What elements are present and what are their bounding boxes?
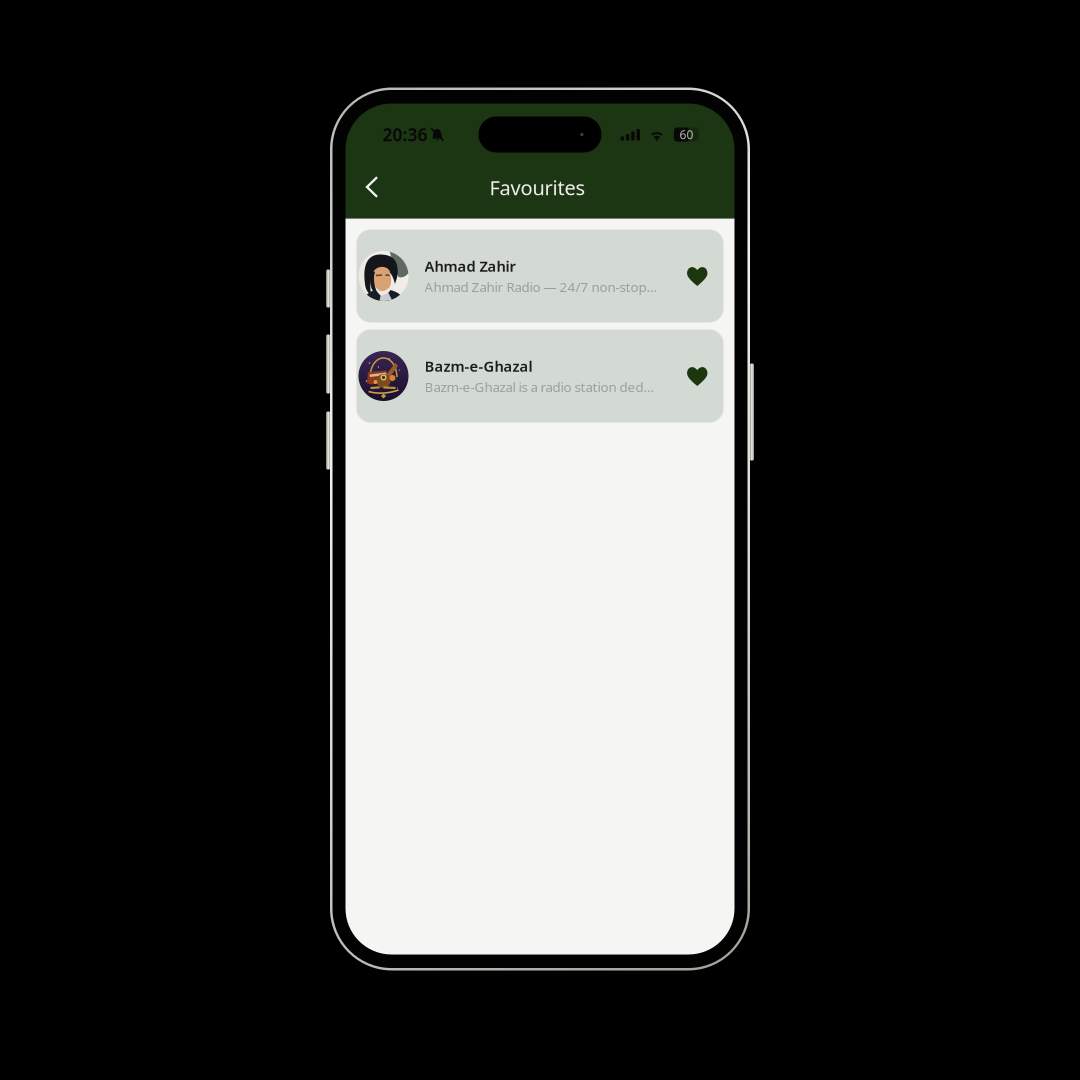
staticText: Bazm-e-Ghazal is a radio station ded…	[424, 378, 654, 396]
staticText: Ahmad Zahir	[424, 256, 515, 276]
staticText: 60	[679, 126, 693, 142]
staticText: 20:36	[382, 123, 427, 146]
staticText: Favourites	[489, 174, 585, 201]
button[interactable]: Bazm-e-Ghazal	[356, 329, 723, 422]
button[interactable]: Back	[355, 164, 389, 204]
staticText: Ahmad Zahir Radio — 24/7 non-stop…	[424, 278, 657, 296]
button[interactable]: Ahmad Zahir	[356, 229, 723, 322]
staticText: Bazm-e-Ghazal	[424, 356, 532, 376]
